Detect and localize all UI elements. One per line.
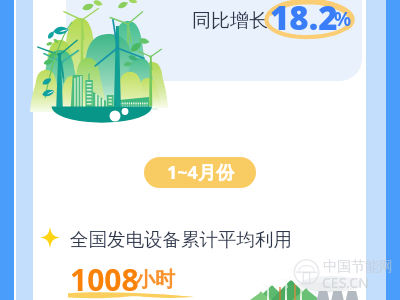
staticText: CES.CN (322, 273, 369, 292)
staticText: 1008 (70, 259, 139, 300)
staticText: 中国节能网 (323, 258, 393, 276)
staticText: 全国发电设备累计平均利用 (70, 228, 292, 251)
button[interactable]: 1~4月份 (144, 157, 256, 188)
staticText: 1~4月份 (167, 160, 234, 185)
staticText: % (334, 6, 352, 32)
staticText: 同比增长 (192, 9, 268, 33)
staticText: 18.2 (270, 0, 338, 40)
staticText: 小时 (135, 267, 175, 292)
